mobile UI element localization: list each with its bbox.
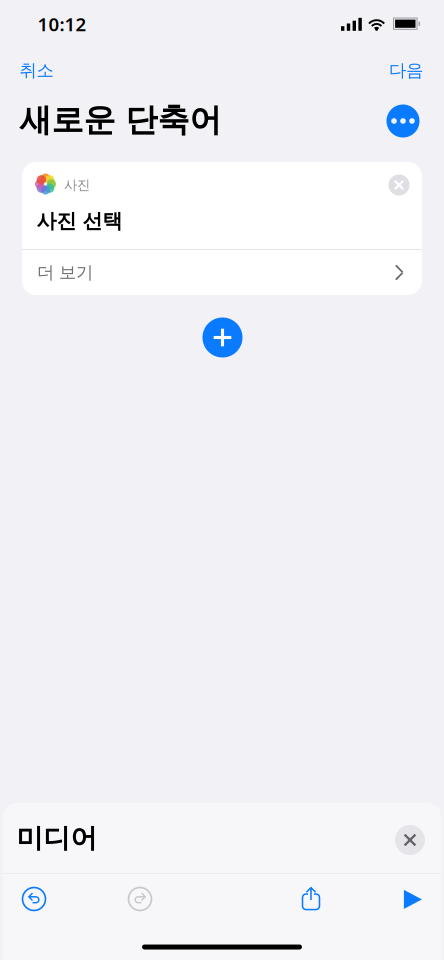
button[interactable]: Redo bbox=[117, 877, 163, 921]
button[interactable]: More options bbox=[381, 99, 425, 143]
staticText: 다음 bbox=[389, 60, 423, 81]
button[interactable]: 취소 bbox=[11, 52, 61, 89]
staticText: 미디어 bbox=[16, 822, 97, 854]
staticText: 사진 선택 bbox=[36, 209, 122, 233]
button[interactable]: Run shortcut bbox=[390, 877, 436, 921]
staticText: 더 보기 bbox=[37, 262, 93, 283]
button[interactable]: Share bbox=[288, 876, 334, 920]
button[interactable]: Undo bbox=[11, 877, 57, 921]
staticText: 취소 bbox=[19, 60, 53, 81]
button[interactable]: 더 보기 bbox=[22, 250, 422, 295]
button[interactable]: Add action bbox=[197, 312, 247, 362]
staticText: 사진 bbox=[64, 177, 90, 193]
button[interactable]: Close media bbox=[388, 818, 432, 862]
staticText: 10:12 bbox=[37, 12, 86, 36]
button[interactable]: Remove action bbox=[381, 167, 417, 203]
button[interactable]: 다음 bbox=[381, 52, 431, 89]
staticText: 새로운 단축어 bbox=[19, 100, 221, 140]
